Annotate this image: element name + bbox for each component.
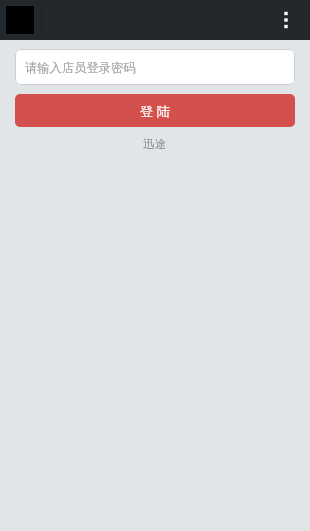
staticText: 请输入店员登录密码: [25, 60, 136, 75]
button[interactable]: More options: [266, 0, 306, 40]
button[interactable]: 登 陆: [15, 94, 295, 127]
button[interactable]: 请输入店员登录密码: [15, 49, 295, 85]
staticText: 登 陆: [140, 102, 170, 120]
button[interactable]: 迅途: [143, 137, 167, 152]
